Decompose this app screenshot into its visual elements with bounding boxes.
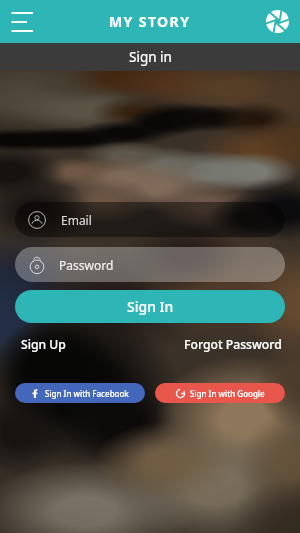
button[interactable]: Forgot Password: [178, 334, 285, 355]
staticText: Sign in: [129, 48, 172, 66]
button[interactable]: Sign in: [0, 43, 300, 71]
staticText: Forgot Password: [184, 336, 282, 353]
button[interactable]: Camera: [266, 10, 289, 33]
button[interactable]: Sign In with Google: [155, 383, 285, 403]
staticText: Sign In with Facebook: [45, 388, 129, 399]
staticText: Password: [59, 257, 114, 273]
staticText: Sign In with Google: [190, 388, 265, 399]
button[interactable]: Password: [15, 247, 285, 282]
staticText: Sign Up: [21, 336, 66, 353]
button[interactable]: Sign In with Facebook: [15, 383, 145, 403]
button[interactable]: Sign Up: [15, 334, 72, 355]
button[interactable]: Open navigation menu: [11, 9, 37, 35]
button[interactable]: Email: [15, 202, 285, 237]
staticText: Sign In: [127, 297, 174, 316]
button[interactable]: Sign In: [15, 290, 285, 323]
staticText: Email: [61, 212, 92, 228]
staticText: MY STORY: [109, 12, 191, 31]
